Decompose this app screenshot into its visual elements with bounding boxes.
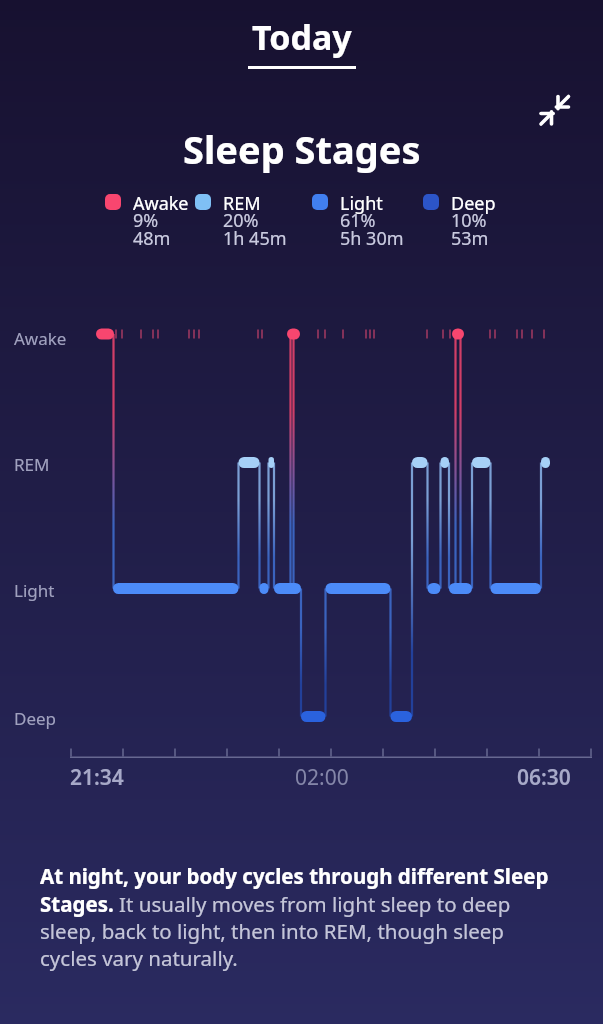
button[interactable]: Today xyxy=(252,14,352,60)
staticText: 1h 45m xyxy=(223,226,287,251)
staticText: Light xyxy=(340,191,383,216)
staticText: Deep xyxy=(451,191,496,216)
staticText: 20% xyxy=(223,208,259,233)
staticText: Light xyxy=(14,579,55,602)
staticText: 21:34 xyxy=(70,763,124,792)
button[interactable]: Deep xyxy=(423,191,523,249)
staticText: 53m xyxy=(451,226,489,251)
staticText: 10% xyxy=(451,208,487,233)
staticText: 48m xyxy=(133,226,171,251)
staticText: Awake xyxy=(14,327,67,350)
button[interactable]: Light xyxy=(312,191,412,249)
button[interactable]: REM xyxy=(195,191,295,249)
staticText: Sleep Stages xyxy=(183,123,421,175)
staticText: Today xyxy=(252,14,352,60)
staticText: 02:00 xyxy=(295,763,349,792)
button[interactable] xyxy=(530,85,578,133)
staticText: Awake xyxy=(133,191,189,216)
staticText: 9% xyxy=(133,208,159,233)
staticText: 5h 30m xyxy=(340,226,404,251)
staticText: At night, your body cycles through diffe… xyxy=(40,862,563,972)
staticText: 61% xyxy=(340,208,376,233)
staticText: REM xyxy=(14,453,50,476)
button[interactable]: Awake xyxy=(105,191,205,249)
staticText: Deep xyxy=(14,707,57,730)
staticText: 06:30 xyxy=(517,763,571,792)
staticText: REM xyxy=(223,191,261,216)
